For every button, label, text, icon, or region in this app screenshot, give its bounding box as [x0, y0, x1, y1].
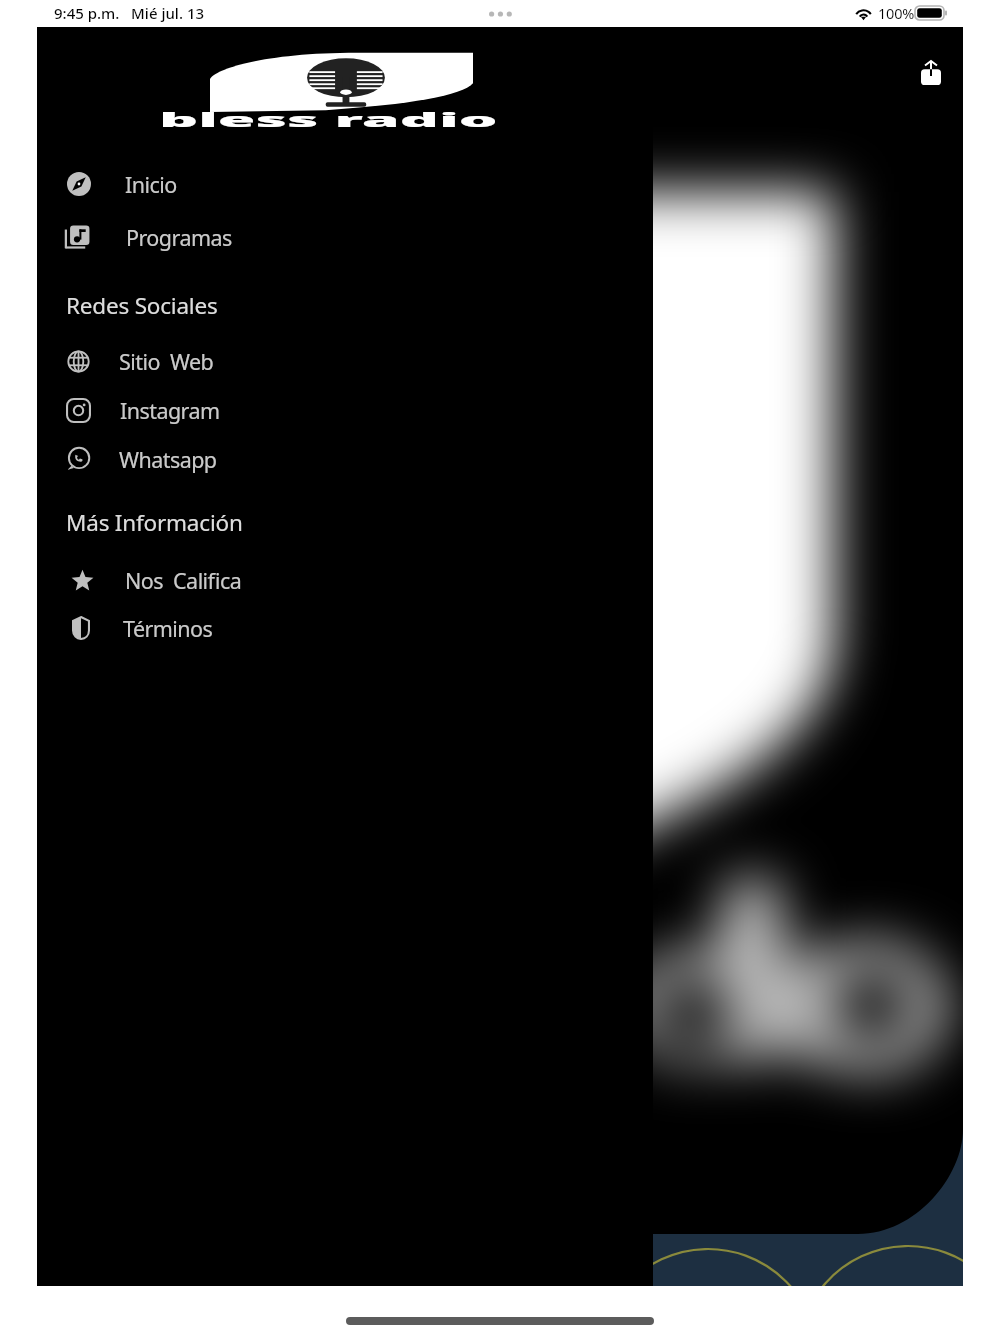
button[interactable]: Nos Califica: [37, 553, 617, 607]
other: Share: [921, 61, 941, 85]
staticText: 100%: [878, 3, 915, 23]
staticText: Instagram: [120, 396, 220, 425]
button[interactable]: Inicio: [37, 157, 617, 211]
button[interactable]: Programas: [37, 210, 617, 264]
staticText: 9:45 p.m. Mié jul. 13: [54, 3, 205, 23]
staticText: Nos Califica: [125, 566, 242, 595]
staticText: Programas: [126, 223, 232, 252]
staticText: Términos: [123, 614, 213, 643]
staticText: Whatsapp: [119, 445, 217, 474]
staticText: Más Información: [66, 507, 243, 538]
staticText: Sitio Web: [119, 347, 214, 376]
button[interactable]: Whatsapp: [37, 432, 617, 486]
button[interactable]: Sitio Web: [37, 334, 617, 388]
staticText: bless radio: [159, 105, 498, 133]
staticText: Inicio: [125, 170, 177, 199]
button[interactable]: Share: [909, 51, 953, 95]
button[interactable]: Instagram: [37, 383, 617, 437]
button[interactable]: Términos: [37, 601, 617, 655]
staticText: Redes Sociales: [66, 290, 218, 321]
